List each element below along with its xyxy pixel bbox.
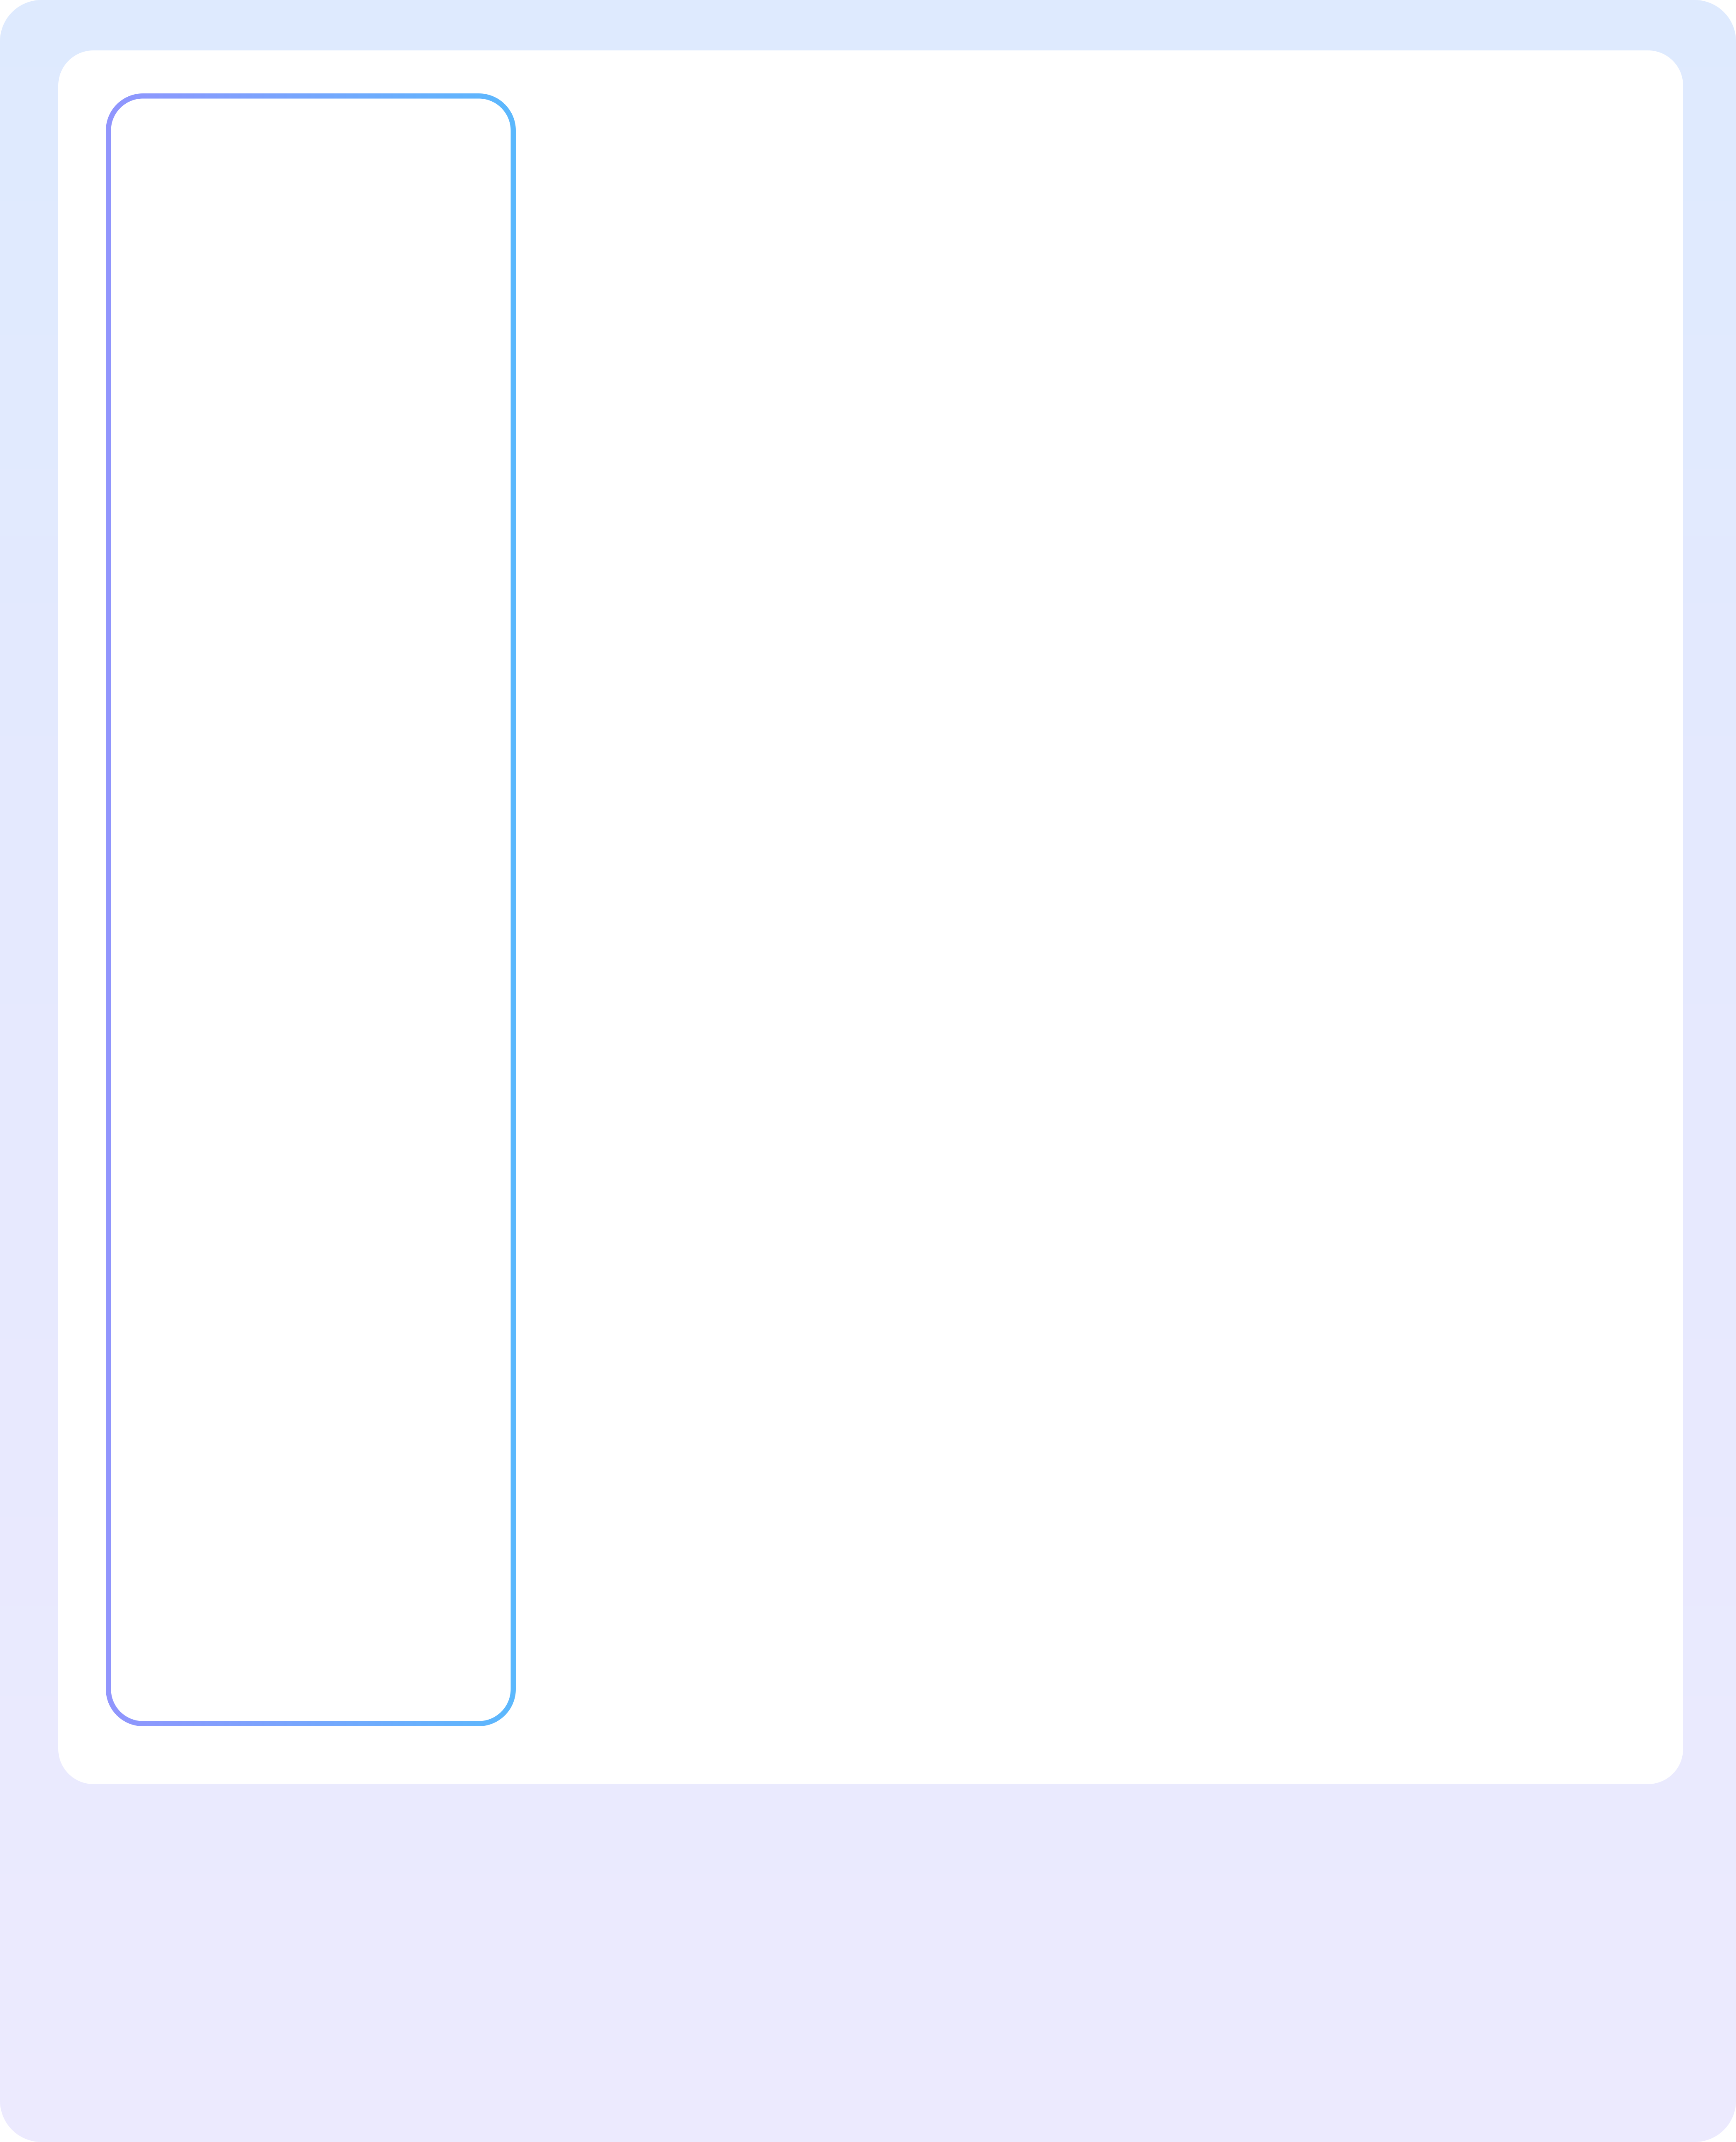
button[interactable]: Preview placeholder [106, 93, 516, 1726]
